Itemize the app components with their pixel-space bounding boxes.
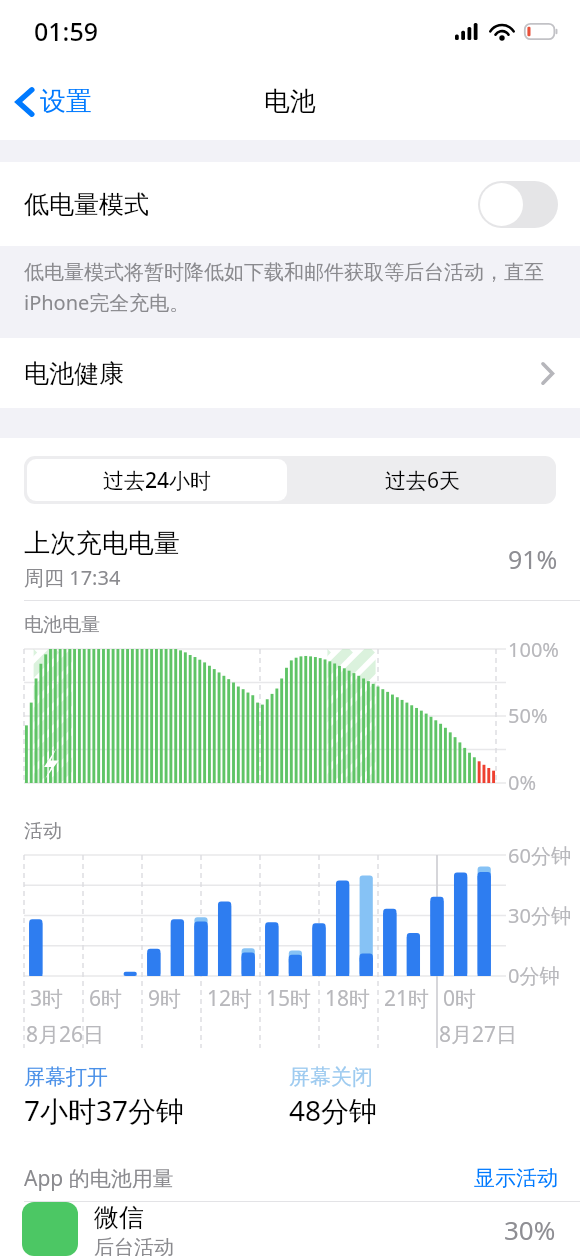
- staticText: 0时: [443, 984, 477, 1013]
- staticText: 9时: [148, 984, 182, 1013]
- staticText: 过去24小时: [103, 466, 212, 495]
- button[interactable]: 过去24小时: [27, 459, 287, 501]
- staticText: 01:59: [34, 14, 99, 48]
- staticText: 21时: [384, 984, 430, 1013]
- button[interactable]: 微信: [0, 1202, 580, 1256]
- staticText: 设置: [40, 85, 92, 118]
- staticText: 低电量模式将暂时降低如下载和邮件获取等后台活动，直至 iPhone完全充电。: [24, 260, 544, 316]
- staticText: 8月27日: [439, 1020, 518, 1049]
- button[interactable]: 低电量模式: [0, 162, 580, 246]
- staticText: 活动: [24, 819, 62, 843]
- button[interactable]: 电池健康: [0, 338, 580, 408]
- staticText: 50%: [508, 702, 548, 729]
- staticText: 微信: [94, 1202, 144, 1233]
- staticText: 6时: [89, 984, 123, 1013]
- staticText: 屏幕关闭: [289, 1064, 373, 1090]
- staticText: 电池电量: [24, 613, 100, 637]
- staticText: 30分钟: [508, 902, 571, 929]
- staticText: 91%: [508, 542, 558, 576]
- button[interactable]: 设置: [8, 77, 100, 126]
- staticText: 屏幕打开: [24, 1064, 108, 1090]
- staticText: 18时: [325, 984, 371, 1013]
- staticText: 后台活动: [94, 1235, 174, 1256]
- staticText: 30%: [504, 1212, 556, 1247]
- staticText: 60分钟: [508, 842, 571, 869]
- staticText: 上次充电电量: [24, 527, 180, 560]
- staticText: 过去6天: [385, 466, 461, 495]
- button[interactable]: 低电量模式开关: [478, 181, 558, 228]
- staticText: 15时: [266, 984, 312, 1013]
- staticText: 100%: [508, 636, 559, 663]
- staticText: 7小时37分钟: [24, 1091, 185, 1129]
- staticText: App 的电池用量: [24, 1164, 174, 1193]
- staticText: 低电量模式: [24, 189, 149, 220]
- staticText: 电池: [264, 85, 316, 118]
- staticText: 3时: [30, 984, 64, 1013]
- button[interactable]: 过去6天: [290, 456, 556, 504]
- staticText: 48分钟: [289, 1091, 378, 1129]
- staticText: 显示活动: [474, 1165, 558, 1191]
- button[interactable]: 显示活动: [464, 1159, 580, 1197]
- staticText: 0分钟: [508, 962, 560, 989]
- staticText: 0%: [508, 769, 537, 796]
- staticText: 12时: [207, 984, 253, 1013]
- staticText: 电池健康: [24, 358, 124, 389]
- staticText: 周四 17:34: [24, 564, 121, 591]
- staticText: 8月26日: [26, 1020, 105, 1049]
